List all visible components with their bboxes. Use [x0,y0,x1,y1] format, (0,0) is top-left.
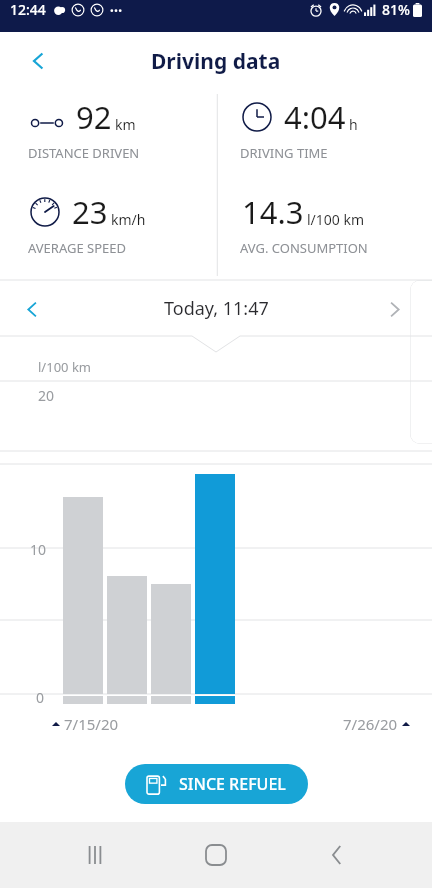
staticText: 4:04 [284,96,346,138]
staticText: l/100 km [307,210,365,229]
button[interactable]: Recent apps [69,829,121,881]
staticText: Today, 11:47 [164,296,269,321]
staticText: 12:44 [10,0,46,19]
staticText: 10 [30,540,47,559]
staticText: 23 [72,191,108,233]
staticText: 7/26/20 [343,714,398,734]
staticText: 7/15/20 [64,714,119,734]
button[interactable]: SINCE REFUEL [125,764,308,804]
staticText: SINCE REFUEL [179,773,286,795]
staticText: DISTANCE DRIVEN [28,144,140,162]
staticText: 92 [76,96,112,138]
staticText: 0 [36,688,45,707]
staticText: 20 [38,386,55,405]
staticText: DRIVING TIME [240,144,328,162]
staticText: km/h [111,210,146,229]
staticText: l/100 km [38,358,91,376]
button[interactable]: Home [190,829,242,881]
staticText: AVG. CONSUMPTION [240,239,368,257]
button[interactable]: Back [18,41,58,81]
staticText: AVERAGE SPEED [28,239,126,257]
button[interactable]: Back [311,829,363,881]
staticText: Driving data [151,47,281,76]
button[interactable]: Next [372,287,416,331]
button[interactable]: Previous [10,287,54,331]
staticText: h [349,115,358,134]
staticText: 14.3 [242,191,304,233]
staticText: km [115,115,136,134]
staticText: 81% [382,0,410,19]
